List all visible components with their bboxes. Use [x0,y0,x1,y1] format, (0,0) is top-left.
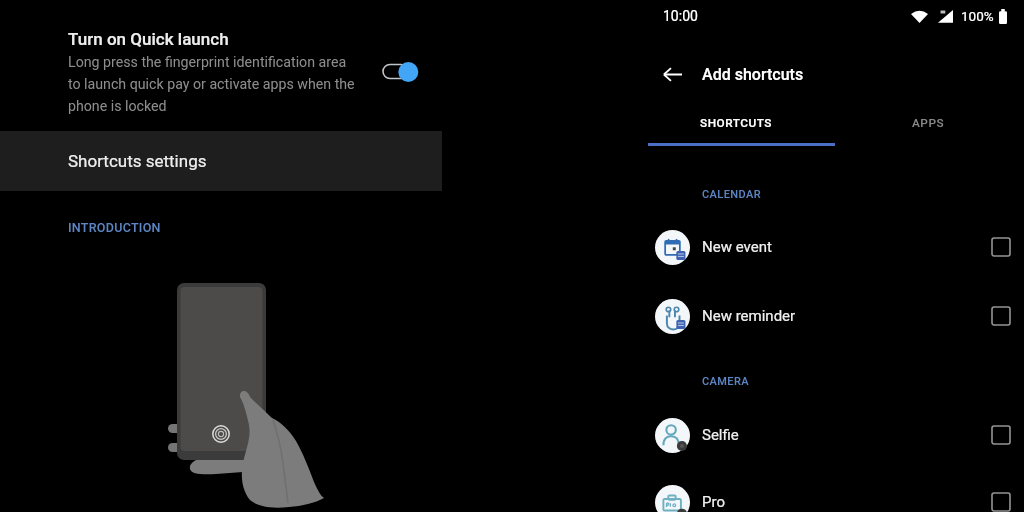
button[interactable]: New event [640,213,1024,281]
button[interactable]: Shortcuts settings [0,131,442,191]
button[interactable]: Quick launch toggle [376,58,422,86]
button[interactable]: Back [650,52,694,96]
staticText: CAMERA [702,375,749,388]
staticText: SHORTCUTS [700,116,772,130]
staticText: Pro [702,493,725,511]
staticText: New reminder [702,307,796,325]
button[interactable]: Selfie [640,401,1024,469]
button[interactable]: SHORTCUTS [640,102,832,147]
staticText: Long press the fingerprint identificatio… [68,54,358,114]
staticText: Shortcuts settings [68,151,207,171]
staticText: 100% [961,8,994,24]
staticText: INTRODUCTION [68,220,161,235]
button[interactable]: New reminder [640,282,1024,350]
staticText: Add shortcuts [702,65,804,84]
staticText: CALENDAR [702,188,761,201]
staticText: New event [702,238,772,256]
staticText: Turn on Quick launch [68,29,229,49]
staticText: Selfie [702,426,739,444]
button[interactable]: APPS [832,102,1024,147]
staticText: APPS [912,116,945,130]
staticText: 10:00 [663,8,698,24]
button[interactable]: Pro [640,468,1024,512]
